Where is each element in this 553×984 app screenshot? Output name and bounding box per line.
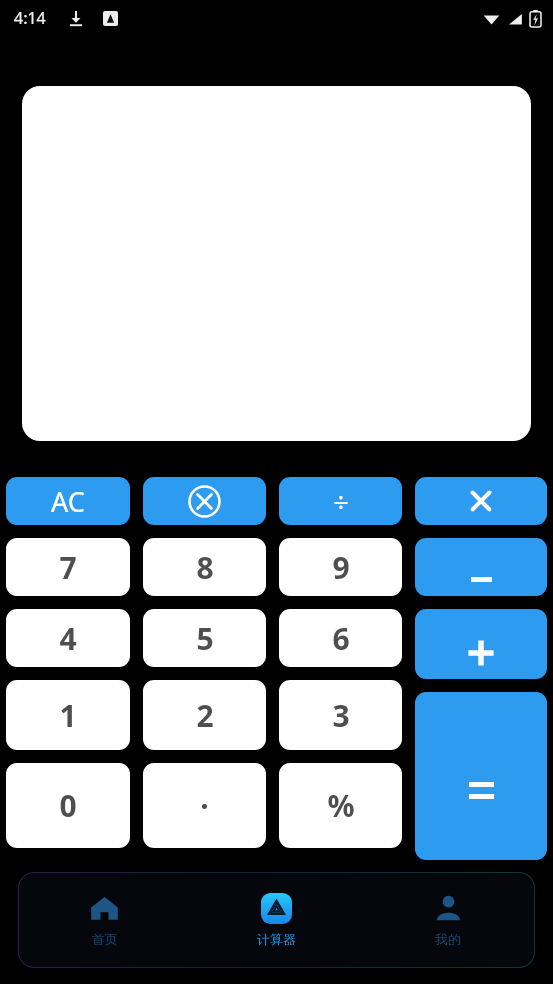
staticText: ÷ — [333, 483, 349, 520]
staticText: 0 — [59, 785, 77, 826]
staticText: 首页 — [92, 931, 118, 947]
staticText: 我的 — [435, 931, 461, 947]
button[interactable]: Clear entry — [143, 477, 266, 525]
button[interactable]: 2 — [143, 680, 266, 750]
staticText: 5 — [196, 618, 214, 659]
button[interactable]: 7 — [6, 538, 130, 596]
button[interactable]: Minus — [415, 538, 547, 596]
button[interactable]: AC — [6, 477, 130, 525]
staticText: 计算器 — [257, 931, 296, 947]
staticText: · — [200, 785, 209, 826]
staticText: 7 — [59, 547, 77, 588]
staticText: 9 — [332, 547, 350, 588]
staticText: 4 — [59, 618, 77, 659]
button[interactable]: Plus — [415, 609, 547, 679]
button[interactable] — [22, 86, 531, 441]
staticText: AC — [51, 483, 85, 520]
staticText: 3 — [332, 695, 350, 736]
button[interactable]: 8 — [143, 538, 266, 596]
button[interactable]: 我的 — [362, 873, 534, 967]
staticText: 1 — [59, 695, 77, 736]
button[interactable]: 1 — [6, 680, 130, 750]
button[interactable]: % — [279, 763, 402, 848]
staticText: 8 — [196, 547, 214, 588]
button[interactable]: 计算器 — [190, 873, 362, 967]
button[interactable]: 0 — [6, 763, 130, 848]
staticText: % — [327, 785, 355, 826]
staticText: 6 — [332, 618, 350, 659]
button[interactable]: · — [143, 763, 266, 848]
staticText: 2 — [196, 695, 214, 736]
button[interactable]: 9 — [279, 538, 402, 596]
button[interactable]: Equals — [415, 692, 547, 860]
button[interactable]: 4 — [6, 609, 130, 667]
staticText: 4:14 — [14, 7, 46, 29]
button[interactable]: Divide — [279, 477, 402, 525]
button[interactable]: Multiply — [415, 477, 547, 525]
button[interactable]: 5 — [143, 609, 266, 667]
button[interactable]: 6 — [279, 609, 402, 667]
button[interactable]: 3 — [279, 680, 402, 750]
button[interactable]: 首页 — [19, 873, 190, 967]
